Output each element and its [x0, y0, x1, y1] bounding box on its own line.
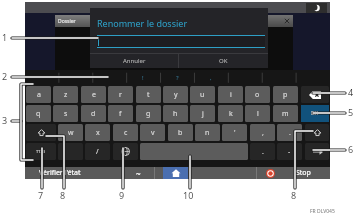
staticText: TT23 [36, 149, 46, 154]
staticText: ? [176, 74, 179, 82]
button[interactable]: p [273, 86, 298, 103]
staticText: u [200, 90, 205, 100]
staticText: a [37, 90, 41, 100]
button[interactable]: Shift [26, 124, 56, 141]
button[interactable]: ! [126, 70, 160, 85]
staticText: q [36, 109, 41, 119]
staticText: p [283, 90, 288, 100]
button[interactable]: x [85, 124, 110, 141]
button[interactable]: h [163, 105, 188, 122]
other: Shift [37, 128, 46, 137]
staticText: ! [142, 74, 144, 82]
staticText: , [262, 128, 264, 138]
staticText: o [255, 90, 260, 100]
button[interactable]: k [218, 105, 243, 122]
button[interactable]: OK [179, 54, 268, 68]
button[interactable]: c [113, 124, 138, 141]
button[interactable]: - [277, 143, 302, 160]
button[interactable]: ~ [123, 167, 154, 179]
staticText: - [288, 147, 291, 157]
staticText: 10 [183, 189, 194, 201]
button[interactable]: Shift [305, 124, 329, 141]
staticText: Renommer le dossier [97, 17, 188, 29]
button[interactable]: w [58, 124, 83, 141]
staticText: Dossier [58, 18, 76, 25]
staticText: 8 [60, 189, 66, 201]
button[interactable]: , [194, 70, 228, 85]
button[interactable]: s [53, 105, 78, 122]
staticText: b [178, 128, 183, 138]
staticText: y [174, 90, 178, 100]
button[interactable]: j [190, 105, 215, 122]
staticText: h [173, 109, 178, 119]
staticText: g [146, 109, 151, 119]
button[interactable] [97, 36, 265, 48]
button[interactable]: . [277, 124, 302, 141]
other: Shift [313, 128, 322, 137]
button[interactable]: i [218, 86, 243, 103]
button[interactable]: Home [163, 167, 188, 179]
button[interactable] [140, 143, 248, 160]
button[interactable]: Vérifier l'état [25, 167, 122, 179]
button[interactable]: e [81, 86, 106, 103]
other: Change language [121, 147, 130, 156]
button[interactable]: b [168, 124, 193, 141]
button[interactable]: Backspace [301, 86, 329, 103]
button[interactable]: ? [160, 70, 194, 85]
button[interactable]: OK [301, 105, 329, 122]
button[interactable]: t [136, 86, 161, 103]
button[interactable]: Close window [283, 17, 291, 25]
staticText: 1 [2, 31, 8, 43]
staticText: 9 [119, 189, 125, 201]
button[interactable]: y [163, 86, 188, 103]
staticText: ~ [136, 168, 141, 179]
button[interactable]: Night mode [306, 3, 327, 13]
staticText: 4 [348, 86, 354, 98]
button[interactable]: TT23 [26, 143, 56, 160]
button[interactable] [58, 143, 83, 160]
button[interactable]: m [273, 105, 298, 122]
button[interactable]: . [250, 143, 275, 160]
button[interactable]: v [140, 124, 165, 141]
button[interactable]: l [245, 105, 270, 122]
staticText: v [151, 128, 155, 138]
staticText: 6 [348, 143, 354, 155]
staticText: , [210, 74, 212, 82]
staticText: s [64, 109, 68, 119]
button[interactable]: a [26, 86, 51, 103]
staticText: 3 [2, 114, 8, 126]
button[interactable]: / [85, 143, 110, 160]
staticText: 2 [2, 70, 8, 82]
staticText: f [119, 109, 122, 119]
staticText: m [282, 109, 289, 119]
button[interactable]: u [190, 86, 215, 103]
button[interactable]: g [136, 105, 161, 122]
staticText: ' [234, 128, 236, 138]
staticText: / [96, 147, 99, 157]
staticText: k [229, 109, 233, 119]
other: Tab [312, 148, 323, 156]
staticText: z [64, 90, 68, 100]
button[interactable]: d [81, 105, 106, 122]
other: Backspace [309, 91, 321, 99]
button[interactable]: Dossier [55, 15, 95, 27]
staticText: 8 [291, 189, 297, 201]
button[interactable]: , [250, 124, 275, 141]
button[interactable]: Stop [294, 167, 330, 179]
button[interactable]: ' [222, 124, 247, 141]
button[interactable]: r [108, 86, 133, 103]
staticText: Stop [296, 168, 311, 178]
button[interactable]: f [108, 105, 133, 122]
button[interactable]: q [26, 105, 51, 122]
button[interactable]: n [195, 124, 220, 141]
staticText: FR DLV045 [310, 208, 335, 215]
button[interactable]: Tab [305, 143, 329, 160]
staticText: x [96, 128, 100, 138]
staticText: . [262, 147, 264, 157]
staticText: OK [311, 110, 319, 117]
button[interactable]: Annuler [90, 54, 178, 68]
button[interactable]: Stop [257, 167, 283, 179]
button[interactable]: o [245, 86, 270, 103]
button[interactable]: Change language [113, 143, 138, 160]
button[interactable]: z [53, 86, 78, 103]
